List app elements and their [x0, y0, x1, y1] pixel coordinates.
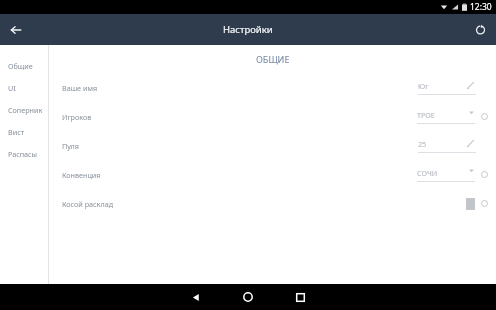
button[interactable]: Expand [467, 108, 475, 116]
staticText: ТРОЕ [417, 110, 435, 120]
staticText: 25 [418, 139, 427, 149]
button[interactable]: Help [479, 169, 490, 180]
staticText: Вист [8, 127, 25, 137]
button[interactable]: Reset [465, 14, 496, 45]
button[interactable]: Вист [0, 121, 48, 143]
button[interactable]: Косой расклад [49, 189, 496, 218]
staticText: Конвенция [62, 170, 101, 180]
button[interactable]: Распасы [0, 143, 48, 165]
staticText: СОЧИ [417, 168, 438, 178]
button[interactable]: Toggle [453, 198, 475, 210]
staticText: UI [8, 83, 16, 93]
button[interactable]: Back [176, 284, 216, 310]
staticText: Общие [8, 61, 33, 71]
staticText: Соперник [8, 105, 43, 115]
button[interactable]: UI [0, 77, 48, 99]
button[interactable]: Пуля [49, 131, 496, 160]
button[interactable]: Home [228, 284, 268, 310]
staticText: Юг [418, 81, 429, 91]
button[interactable]: Конвенция [49, 160, 496, 189]
button[interactable]: Общие [0, 55, 48, 77]
button[interactable]: Игроков [49, 102, 496, 131]
staticText: Ваше имя [62, 83, 98, 93]
staticText: Настройки [223, 23, 273, 36]
staticText: 12:30 [470, 1, 492, 13]
staticText: Распасы [8, 149, 38, 159]
button[interactable]: Соперник [0, 99, 48, 121]
button[interactable]: Edit [465, 80, 476, 91]
button[interactable]: Expand [467, 166, 475, 174]
staticText: Игроков [62, 112, 92, 122]
staticText: Косой расклад [62, 199, 113, 209]
staticText: Пуля [62, 141, 79, 151]
button[interactable]: Recent apps [280, 284, 320, 310]
button[interactable]: Edit [465, 138, 476, 149]
button[interactable]: Help [479, 198, 490, 209]
button[interactable]: Help [479, 111, 490, 122]
button[interactable]: Ваше имя [49, 73, 496, 102]
button[interactable]: Back [0, 14, 31, 45]
staticText: ОБЩИЕ [256, 53, 290, 65]
